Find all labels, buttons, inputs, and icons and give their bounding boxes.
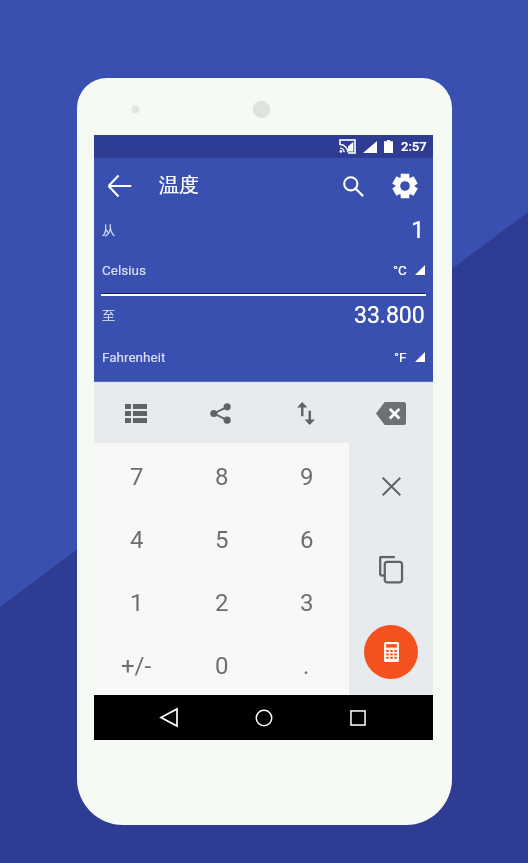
staticText: +/- <box>121 652 152 680</box>
staticText: °C <box>393 262 407 278</box>
button[interactable]: 2 <box>179 569 264 632</box>
staticText: 3 <box>300 589 314 617</box>
staticText: 2:57 <box>401 139 427 154</box>
button[interactable]: Copy <box>349 529 433 610</box>
button[interactable]: 3 <box>264 569 349 632</box>
button[interactable]: Back <box>94 160 146 212</box>
staticText: 温度 <box>159 173 199 198</box>
staticText: . <box>303 652 310 680</box>
staticText: 至 <box>102 307 115 323</box>
staticText: 6 <box>300 526 314 554</box>
button[interactable]: Backspace <box>348 384 433 443</box>
button[interactable]: Recents <box>327 695 389 740</box>
staticText: 5 <box>215 526 229 554</box>
button[interactable]: Search <box>327 160 379 212</box>
button[interactable]: 1 <box>94 569 179 632</box>
button[interactable]: Swap <box>263 384 348 443</box>
staticText: 1 <box>130 589 144 617</box>
staticText: 8 <box>215 463 229 491</box>
button[interactable]: Home <box>233 695 295 740</box>
staticText: 1 <box>411 216 425 244</box>
button[interactable]: . <box>264 632 349 695</box>
button[interactable]: +/- <box>94 632 179 695</box>
button[interactable]: Clear <box>349 443 433 529</box>
staticText: 4 <box>130 526 144 554</box>
button[interactable]: 0 <box>179 632 264 695</box>
button[interactable]: 4 <box>94 506 179 569</box>
staticText: 0 <box>215 652 229 680</box>
button[interactable]: Settings <box>379 160 431 212</box>
button[interactable]: Back <box>138 695 200 740</box>
button[interactable]: 8 <box>179 443 264 506</box>
button[interactable]: 9 <box>264 443 349 506</box>
staticText: 从 <box>102 222 115 238</box>
button[interactable]: Fahrenheit <box>94 334 433 379</box>
staticText: 2 <box>215 589 229 617</box>
staticText: 33.800 <box>354 302 425 329</box>
staticText: 7 <box>130 463 144 491</box>
button[interactable]: 5 <box>179 506 264 569</box>
staticText: °F <box>394 349 407 365</box>
button[interactable]: Share <box>178 384 263 443</box>
button[interactable]: Celsius <box>94 247 433 293</box>
staticText: Fahrenheit <box>102 349 166 365</box>
button[interactable]: 6 <box>264 506 349 569</box>
button[interactable]: Calculator <box>364 625 418 679</box>
button[interactable]: 7 <box>94 443 179 506</box>
staticText: 9 <box>300 463 314 491</box>
button[interactable]: List <box>94 384 178 443</box>
staticText: Celsius <box>102 262 146 278</box>
